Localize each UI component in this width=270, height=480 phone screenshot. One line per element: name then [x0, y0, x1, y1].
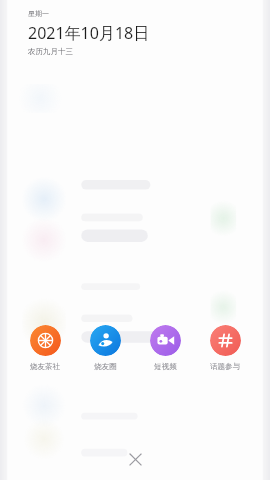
- staticText: 短视频: [154, 362, 177, 371]
- button[interactable]: 烧友圈: [81, 325, 129, 371]
- button[interactable]: 烧友茶社: [21, 325, 69, 371]
- staticText: 烧友圈: [94, 362, 117, 371]
- staticText: 农历九月十三: [28, 47, 73, 56]
- staticText: 2021年10月18日: [28, 22, 150, 44]
- staticText: 星期一: [28, 9, 49, 18]
- button[interactable]: 短视频: [141, 325, 189, 371]
- button[interactable]: 关闭: [122, 446, 148, 472]
- button[interactable]: 话题参与: [201, 325, 249, 371]
- staticText: 话题参与: [210, 362, 240, 371]
- staticText: 烧友茶社: [30, 362, 60, 371]
